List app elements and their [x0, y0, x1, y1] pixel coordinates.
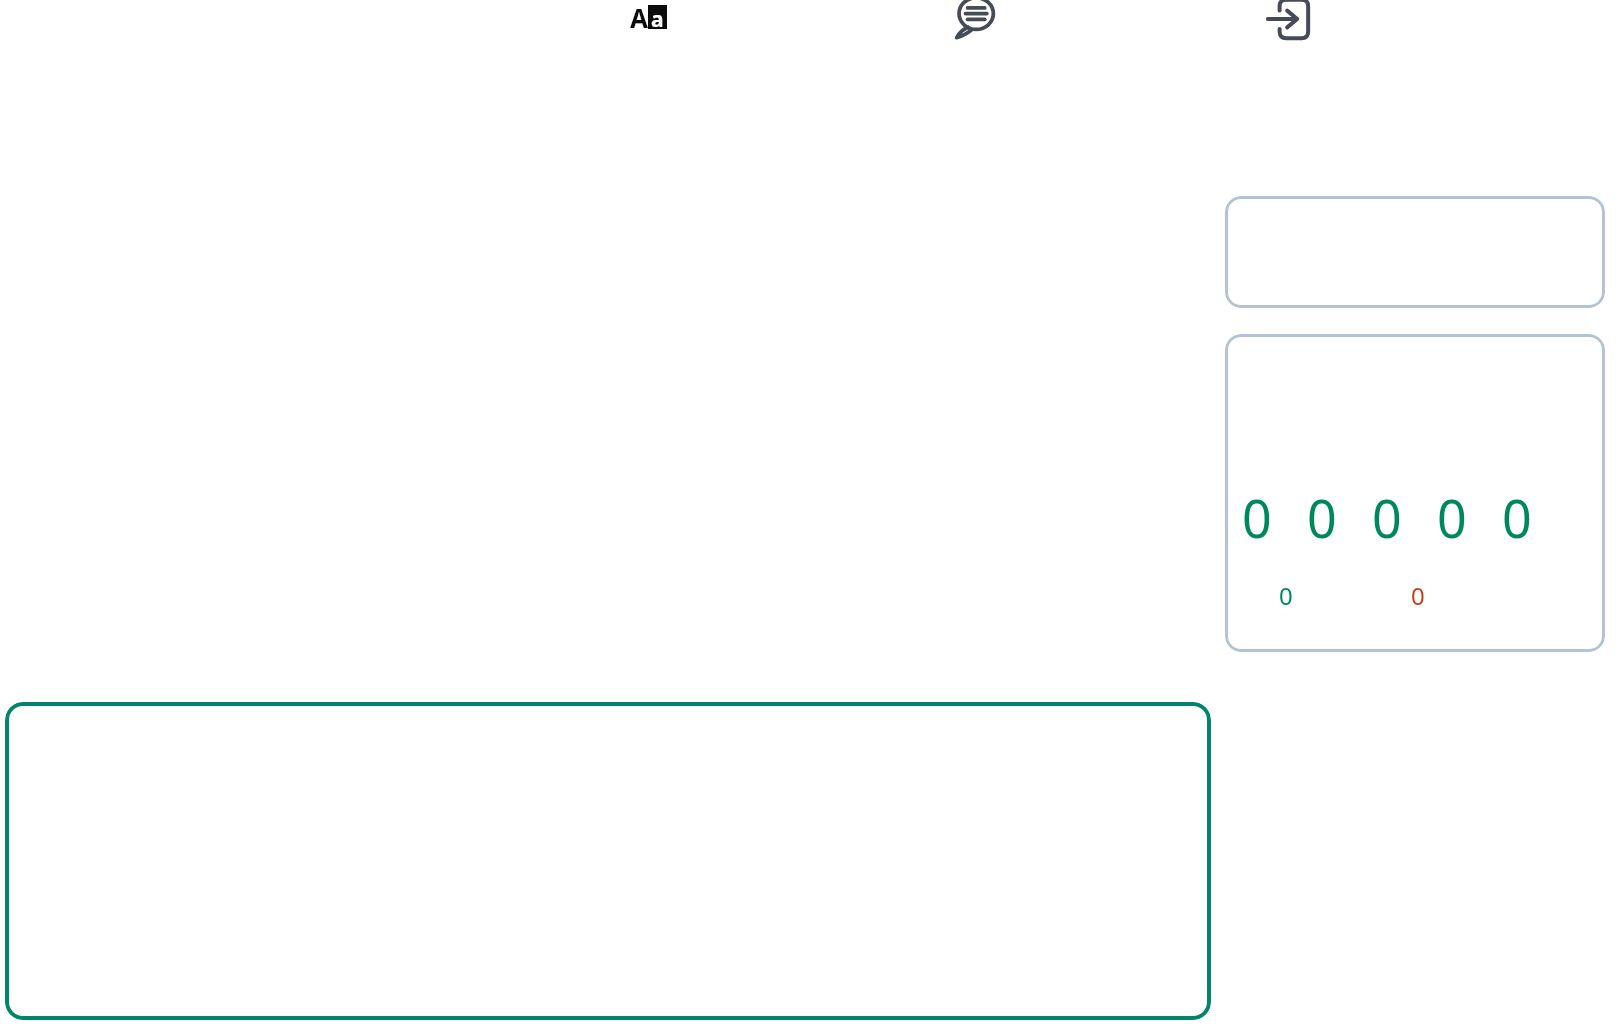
button[interactable]: Comments: [950, 0, 998, 42]
staticText: a: [651, 5, 664, 29]
staticText: 0: [1502, 482, 1532, 553]
button[interactable]: Log in: [1264, 0, 1312, 43]
button[interactable]: Text size: [628, 0, 676, 43]
staticText: 0: [1411, 579, 1425, 612]
staticText: 0: [1279, 579, 1293, 612]
staticText: 0: [1437, 482, 1467, 553]
staticText: A: [630, 0, 648, 34]
button[interactable]: [5, 702, 1211, 1020]
button[interactable]: 0: [1225, 334, 1605, 652]
button[interactable]: [1225, 196, 1605, 308]
staticText: 0: [1372, 482, 1402, 553]
staticText: 0: [1307, 482, 1337, 553]
staticText: 0: [1242, 482, 1272, 553]
